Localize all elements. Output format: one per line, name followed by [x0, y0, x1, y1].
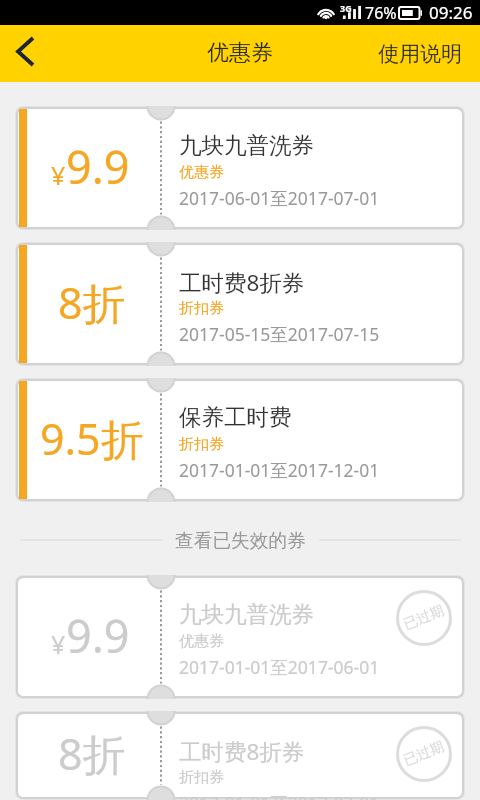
staticText: 已过期 — [401, 602, 447, 634]
staticText: ¥ — [51, 158, 66, 192]
staticText: ¥ — [51, 627, 66, 661]
staticText: 优惠券 — [179, 632, 224, 651]
staticText: 折扣券 — [179, 299, 224, 318]
staticText: 已过期 — [401, 738, 447, 770]
button[interactable]: 查看已失效的券 — [0, 502, 480, 575]
staticText: 2017-01-01至2017-03-01 — [179, 791, 380, 800]
staticText: 九块九普洗券 — [179, 131, 314, 159]
staticText: 8折 — [58, 273, 126, 332]
staticText: 9.5折 — [40, 409, 144, 468]
staticText: 9.9 — [66, 605, 130, 666]
staticText: 保养工时费 — [179, 403, 292, 431]
button[interactable]: 8折 — [15, 242, 465, 366]
button[interactable]: 使用说明 — [360, 27, 480, 81]
staticText: 8折 — [58, 724, 126, 783]
button[interactable]: 8折 — [15, 711, 465, 800]
staticText: 2017-01-01至2017-06-01 — [179, 655, 380, 679]
staticText: 九块九普洗券 — [179, 600, 314, 628]
button[interactable]: Back — [0, 26, 56, 82]
staticText: 2017-05-15至2017-07-15 — [179, 322, 380, 346]
button[interactable]: ¥ — [15, 106, 465, 230]
button[interactable]: ¥ — [15, 575, 465, 699]
staticText: 工时费8折券 — [179, 267, 305, 298]
staticText: 09:26 — [429, 1, 473, 24]
staticText: 折扣券 — [179, 435, 224, 454]
staticText: 2017-06-01至2017-07-01 — [179, 186, 380, 210]
staticText: 工时费8折券 — [179, 736, 305, 767]
staticText: 9.9 — [66, 136, 130, 197]
staticText: 76% — [365, 2, 397, 24]
staticText: 查看已失效的券 — [175, 529, 306, 553]
staticText: 优惠券 — [207, 39, 273, 67]
button[interactable]: 9.5折 — [15, 378, 465, 502]
staticText: 3G — [340, 2, 352, 14]
staticText: 优惠券 — [179, 163, 224, 182]
staticText: 2017-01-01至2017-12-01 — [179, 458, 380, 482]
staticText: 折扣券 — [179, 768, 224, 787]
